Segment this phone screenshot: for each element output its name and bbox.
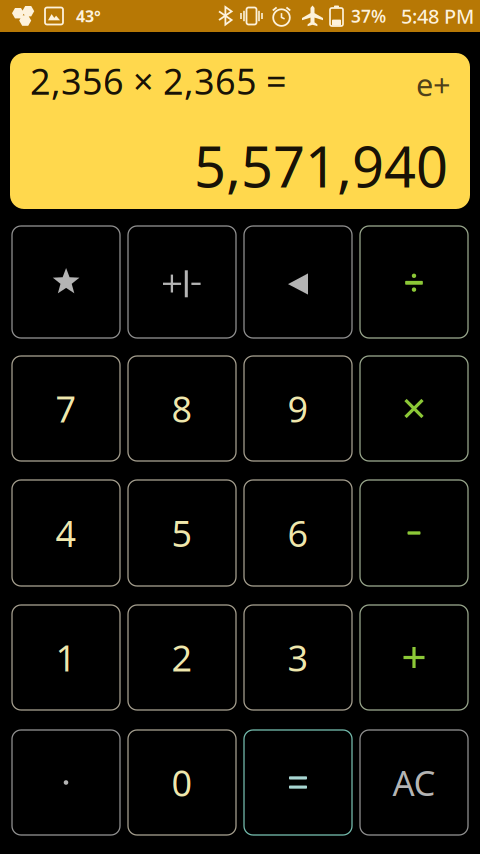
staticText: 8 bbox=[171, 385, 192, 432]
button[interactable]: 8 bbox=[128, 356, 236, 461]
staticText: AC bbox=[392, 759, 435, 805]
button[interactable]: All clear bbox=[360, 730, 468, 835]
staticText: e+ bbox=[416, 64, 451, 105]
button[interactable]: Equals bbox=[244, 730, 352, 835]
staticText: 43° bbox=[76, 5, 101, 27]
button[interactable]: 1 bbox=[12, 605, 120, 710]
button[interactable]: 5 bbox=[128, 480, 236, 586]
button[interactable]: 0 bbox=[128, 730, 236, 835]
button[interactable]: Backspace bbox=[244, 226, 352, 338]
staticText: 4 bbox=[55, 509, 76, 557]
staticText: 0 bbox=[171, 759, 192, 806]
staticText: 3 bbox=[287, 634, 308, 681]
button[interactable]: 2 bbox=[128, 605, 236, 710]
staticText: 9 bbox=[287, 385, 308, 432]
button[interactable]: 3 bbox=[244, 605, 352, 710]
button[interactable]: Divide bbox=[360, 226, 468, 338]
button[interactable]: 7 bbox=[12, 356, 120, 461]
staticText: 5,571,940 bbox=[194, 129, 448, 203]
button[interactable]: 6 bbox=[244, 480, 352, 586]
staticText: 2,356 × 2,365 = bbox=[30, 57, 287, 105]
button[interactable]: Toggle sign bbox=[128, 226, 236, 338]
button[interactable]: 9 bbox=[244, 356, 352, 461]
staticText: 6 bbox=[287, 509, 308, 557]
button[interactable]: Subtract bbox=[360, 480, 468, 586]
staticText: 2 bbox=[171, 634, 192, 681]
button[interactable]: Favourite bbox=[12, 226, 120, 338]
staticText: 5 bbox=[171, 509, 192, 557]
button[interactable]: Decimal point bbox=[12, 730, 120, 835]
button[interactable]: 4 bbox=[12, 480, 120, 586]
staticText: 5:48 PM bbox=[401, 3, 474, 29]
staticText: 7 bbox=[55, 385, 76, 432]
staticText: 1 bbox=[55, 634, 76, 681]
button[interactable]: Add bbox=[360, 605, 468, 710]
button[interactable]: Multiply bbox=[360, 356, 468, 461]
staticText: 37% bbox=[351, 4, 386, 27]
